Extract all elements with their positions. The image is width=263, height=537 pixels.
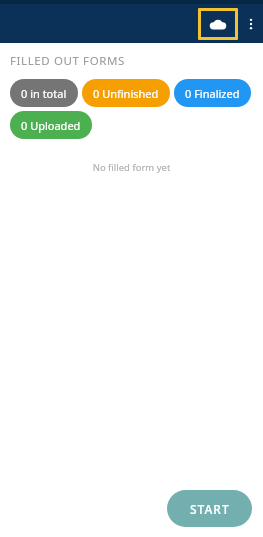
staticText: 0 Uploaded <box>21 118 81 133</box>
staticText: 0 in total <box>21 86 67 101</box>
button[interactable]: 0 Unfinished <box>82 79 170 107</box>
staticText: 0 Finalized <box>185 86 240 101</box>
button[interactable]: 0 in total <box>10 79 78 107</box>
button[interactable]: START <box>167 490 252 527</box>
button[interactable]: More options <box>241 7 261 41</box>
staticText: START <box>190 501 230 517</box>
button[interactable]: 0 Uploaded <box>10 111 92 139</box>
button[interactable]: Upload <box>197 7 239 41</box>
staticText: FILLED OUT FORMS <box>10 53 125 69</box>
staticText: No filled form yet <box>0 161 263 174</box>
button[interactable]: 0 Finalized <box>174 79 251 107</box>
staticText: 0 Unfinished <box>93 86 159 101</box>
